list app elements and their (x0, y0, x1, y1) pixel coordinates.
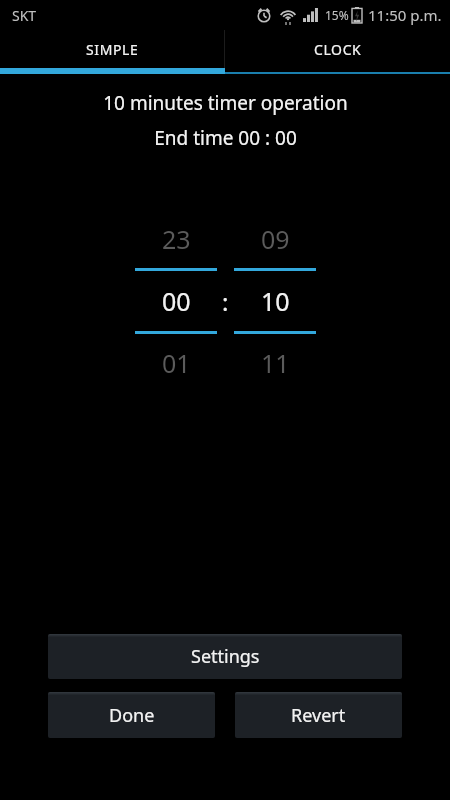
staticText: Settings (191, 644, 260, 669)
button[interactable]: Revert (235, 692, 402, 738)
staticText: End time 00 : 00 (154, 125, 297, 151)
staticText: CLOCK (314, 40, 362, 59)
staticText: 09 (261, 222, 290, 256)
staticText: Done (109, 703, 155, 728)
staticText: 10 minutes timer operation (103, 90, 348, 116)
staticText: 10 (261, 284, 290, 318)
staticText: 23 (162, 222, 191, 256)
staticText: 11 (261, 346, 290, 380)
button[interactable]: SIMPLE (0, 30, 224, 68)
staticText: 00 (162, 284, 191, 318)
button[interactable]: Done (48, 692, 215, 738)
staticText: Revert (291, 703, 346, 728)
staticText: : (222, 285, 229, 318)
button[interactable]: CLOCK (225, 30, 450, 68)
staticText: SIMPLE (86, 40, 139, 59)
button[interactable]: 23 (135, 210, 217, 392)
staticText: 11:50 p.m. (368, 5, 442, 25)
button[interactable]: Settings (48, 634, 402, 679)
staticText: SKT (12, 6, 37, 25)
staticText: 01 (162, 346, 191, 380)
staticText: 15% (325, 7, 349, 23)
button[interactable]: 09 (234, 210, 316, 392)
